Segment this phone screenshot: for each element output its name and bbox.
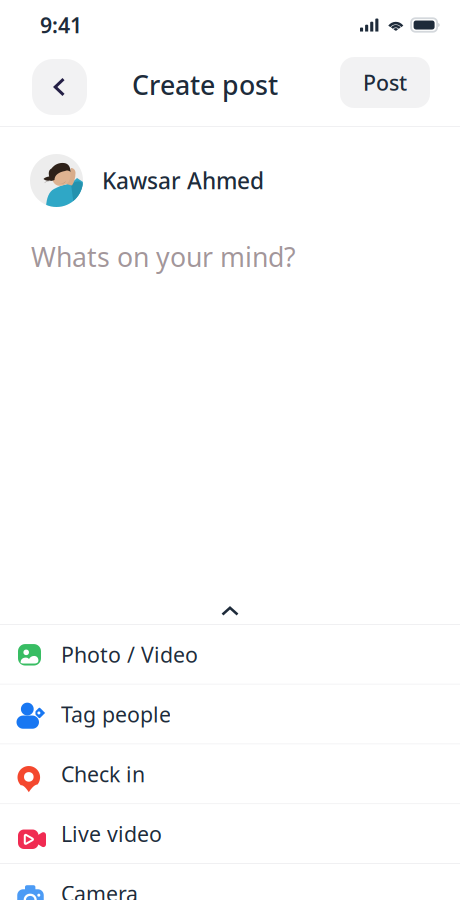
button[interactable]: Check in (0, 744, 460, 804)
staticText: Kawsar Ahmed (102, 165, 264, 195)
staticText: Photo / Video (61, 640, 198, 668)
button[interactable]: Live video (0, 804, 460, 864)
staticText: Whats on your mind? (31, 239, 296, 274)
button[interactable]: Post (340, 57, 430, 108)
button[interactable]: Tag people (0, 685, 460, 745)
staticText: Create post (132, 67, 278, 102)
staticText: Live video (61, 819, 162, 848)
button[interactable]: Camera (0, 864, 460, 900)
staticText: Post (363, 68, 407, 97)
staticText: Tag people (61, 700, 171, 728)
staticText: Camera (61, 879, 138, 900)
staticText: Check in (61, 760, 145, 788)
button[interactable]: Back (32, 59, 87, 115)
staticText: 9:41 (40, 11, 82, 39)
button[interactable]: Photo / Video (0, 625, 460, 685)
